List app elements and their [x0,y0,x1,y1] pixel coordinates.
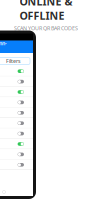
staticText: Filters [6,57,21,65]
staticText: Scanner [0,40,7,54]
button[interactable] [0,66,33,76]
button[interactable] [0,76,33,87]
button[interactable] [0,118,33,128]
button[interactable] [0,108,33,118]
button[interactable] [0,97,33,108]
staticText: SCAN YOUR QR BAR CODES [14,25,78,32]
button[interactable] [0,149,33,160]
button[interactable] [0,87,33,97]
button[interactable] [0,139,33,149]
staticText: ONLINE & OFFLINE [19,0,72,23]
button[interactable] [0,128,33,139]
button[interactable] [0,160,33,170]
